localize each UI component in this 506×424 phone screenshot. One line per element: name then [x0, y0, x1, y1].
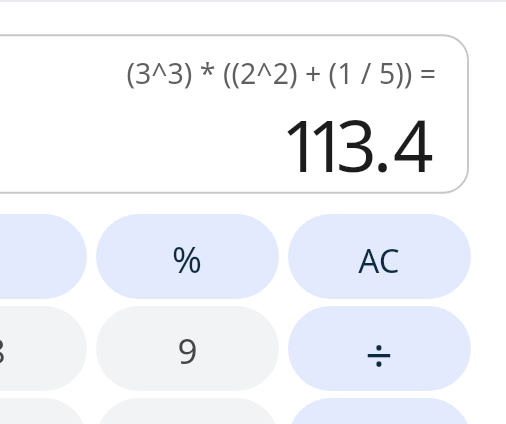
- button[interactable]: Five: [0, 398, 87, 424]
- staticText: %: [172, 235, 202, 284]
- button[interactable]: Percent: [96, 214, 279, 299]
- staticText: 3: [336, 96, 377, 193]
- staticText: (3^3) * ((2^2) + (1 / 5)) =: [126, 54, 436, 93]
- button[interactable]: Nine: [96, 306, 279, 391]
- staticText: 4: [393, 96, 434, 193]
- staticText: AC: [358, 238, 400, 283]
- staticText: 8: [0, 327, 6, 375]
- staticText: 9: [177, 327, 198, 375]
- staticText: ÷: [365, 322, 393, 387]
- button[interactable]: Parentheses: [0, 214, 87, 299]
- staticText: 1: [281, 96, 322, 193]
- button[interactable]: Eight: [0, 306, 87, 391]
- button[interactable]: Multiply: [288, 398, 471, 424]
- button[interactable]: Divide: [288, 306, 471, 391]
- button[interactable]: Six: [96, 398, 279, 424]
- staticText: .: [373, 96, 393, 193]
- staticText: 1: [307, 96, 348, 193]
- button[interactable]: All clear: [288, 214, 471, 299]
